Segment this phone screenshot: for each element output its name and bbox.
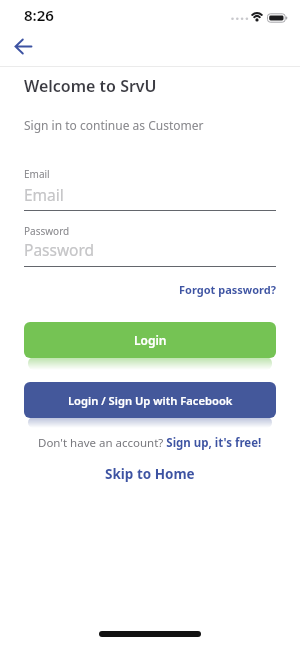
staticText: Sign in to continue as Customer	[24, 117, 204, 133]
staticText: Skip to Home	[105, 465, 195, 483]
staticText: Don't have an account? Sign up, it's fre…	[38, 435, 262, 451]
staticText: Password	[24, 239, 95, 260]
button[interactable]: Don't have an account? Sign up, it's fre…	[38, 435, 262, 451]
staticText: Password	[24, 224, 70, 238]
button[interactable]: Forgot password?	[179, 282, 276, 297]
staticText: Login / Sign Up with Facebook	[68, 393, 233, 408]
staticText: Forgot password?	[179, 282, 276, 297]
staticText: Email	[24, 167, 50, 181]
button[interactable]	[9, 33, 37, 61]
button[interactable]: Login	[24, 322, 276, 358]
staticText: Email	[24, 184, 64, 205]
staticText: 8:26	[24, 5, 54, 25]
button[interactable]: Skip to Home	[105, 465, 195, 483]
staticText: Login	[134, 332, 167, 348]
staticText: Welcome to SrvU	[24, 75, 157, 97]
button[interactable]: Login / Sign Up with Facebook	[24, 382, 276, 418]
